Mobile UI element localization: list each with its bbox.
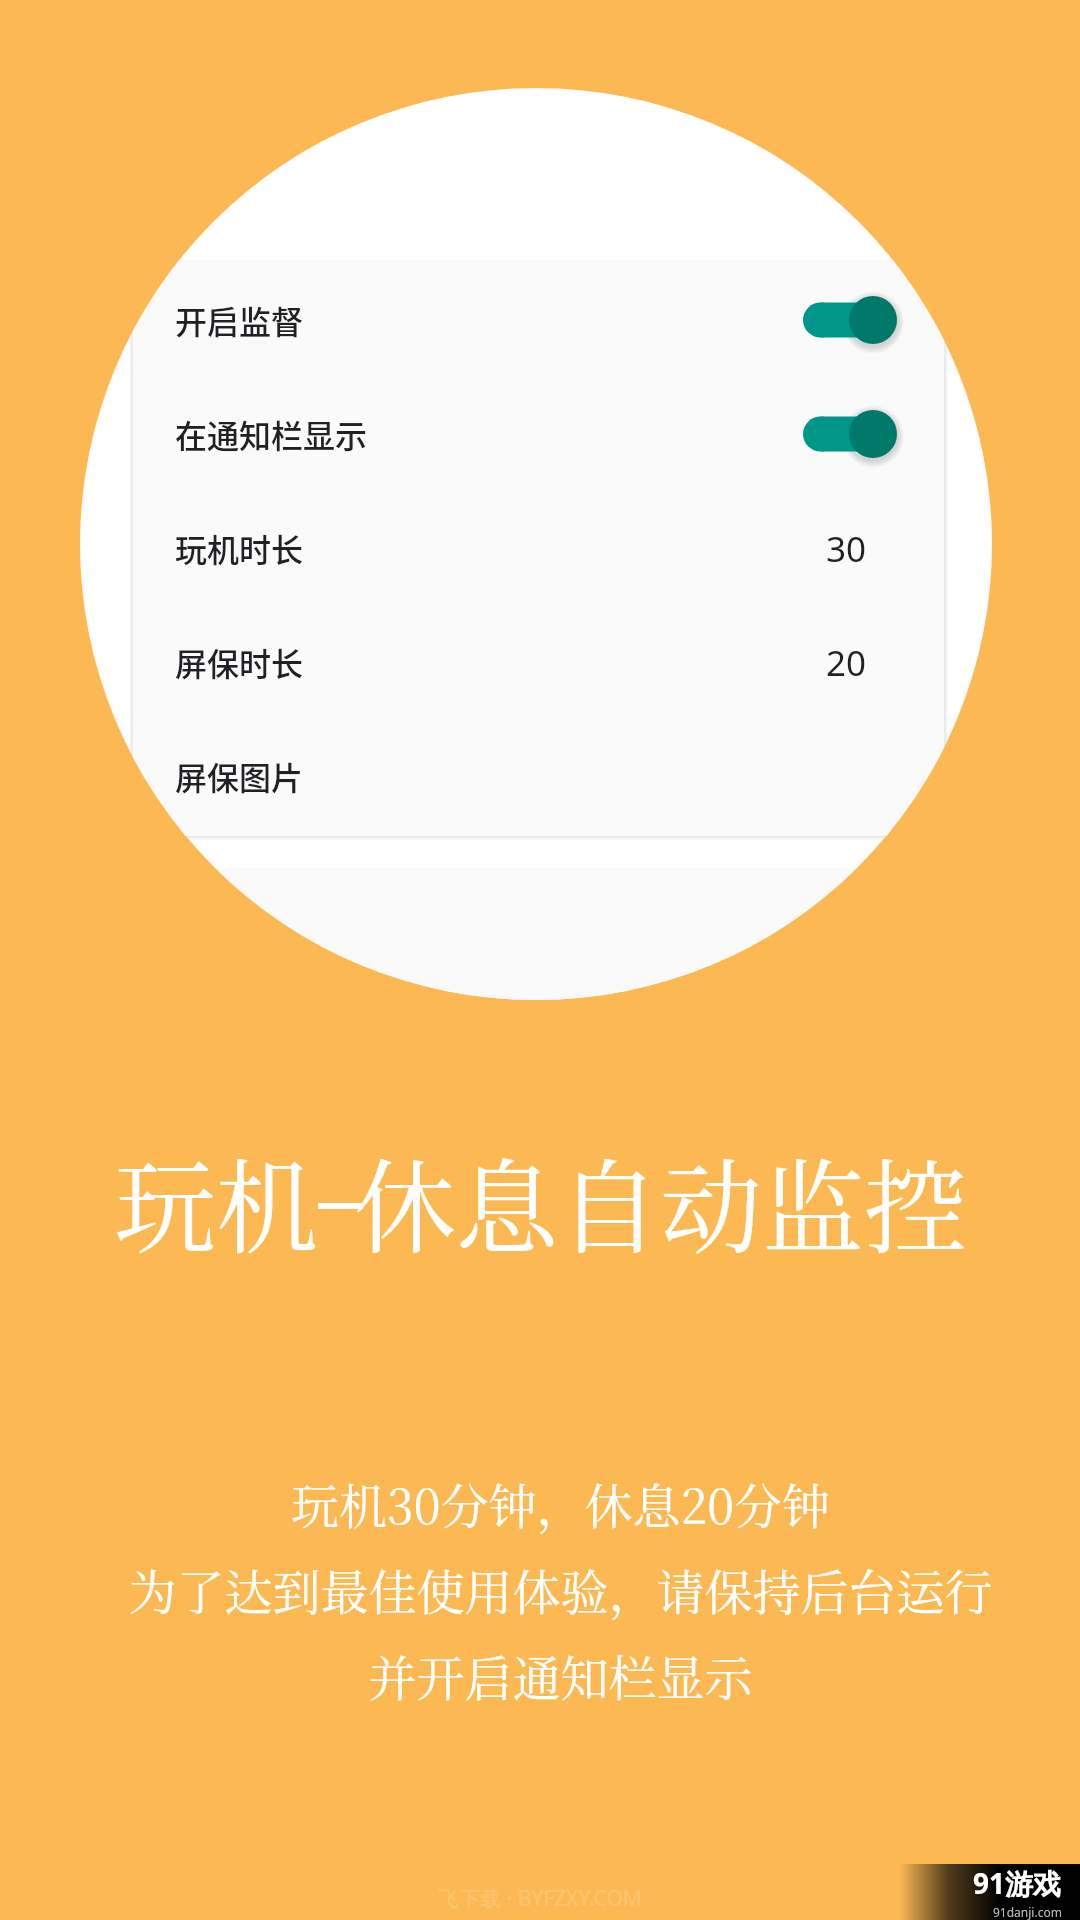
staticText: 为了达到最佳使用体验，请保持后台运行 (128, 1555, 993, 1624)
staticText: 屏保图片 (175, 753, 304, 799)
staticText: 屏保时长 (175, 639, 304, 685)
staticText: 30 (826, 525, 867, 573)
staticText: 玩机时长 (175, 525, 304, 571)
button[interactable]: 玩机时长 (133, 491, 944, 605)
button[interactable]: 在通知栏显示 (133, 377, 944, 491)
staticText: 开启监督 (175, 297, 304, 343)
button[interactable]: Toggle (803, 408, 897, 460)
staticText: 并开启通知栏显示 (368, 1641, 753, 1710)
staticText: 20 (826, 639, 867, 687)
button[interactable]: 开启监督 (133, 263, 944, 377)
button[interactable]: Toggle (803, 294, 897, 346)
button[interactable]: 屏保时长 (133, 605, 944, 719)
staticText: 在通知栏显示 (175, 411, 368, 457)
button[interactable]: 屏保图片 (133, 719, 944, 833)
staticText: 飞下载 · BYFZXY.COM (0, 1884, 1080, 1913)
staticText: 休息自动监控 (354, 1128, 966, 1275)
staticText: 91游戏 (973, 1864, 1062, 1902)
staticText: 玩机 (114, 1128, 318, 1275)
staticText: 91danji.com (993, 1904, 1062, 1920)
staticText: 玩机30分钟，休息20分钟 (291, 1469, 830, 1538)
